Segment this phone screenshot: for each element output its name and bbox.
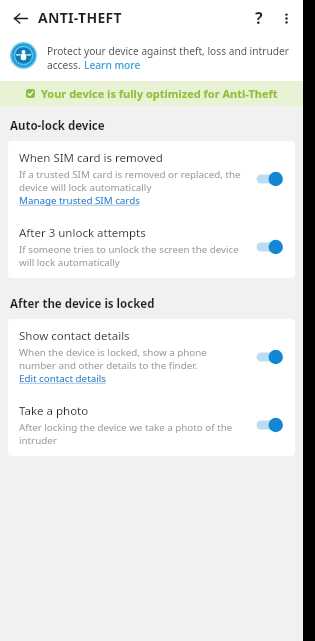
button[interactable]: Learn more: [84, 58, 141, 72]
staticText: Manage trusted SIM cards: [19, 194, 140, 207]
staticText: Show contact details: [19, 328, 130, 344]
staticText: ANTI-THEFT: [38, 8, 122, 27]
staticText: Protect your device against theft, loss …: [47, 44, 289, 58]
button[interactable]: Help: [245, 4, 273, 32]
staticText: Your device is fully optimized for Anti-…: [41, 86, 278, 101]
staticText: ?: [255, 7, 263, 29]
staticText: After locking the device we take a photo…: [19, 421, 245, 447]
button[interactable]: Take a photo: [8, 394, 295, 456]
button[interactable]: Manage trusted SIM cards: [19, 194, 140, 207]
staticText: If a trusted SIM card is removed or repl…: [19, 168, 245, 194]
staticText: access.: [47, 58, 84, 72]
button[interactable]: After 3 unlock attempts: [8, 216, 295, 278]
button[interactable]: When SIM card is removed: [8, 141, 295, 216]
button[interactable]: Toggle setting on: [249, 234, 289, 260]
staticText: Edit contact details: [19, 372, 106, 385]
staticText: When SIM card is removed: [19, 150, 163, 166]
button[interactable]: Toggle setting on: [249, 344, 289, 370]
button[interactable]: More options: [273, 5, 299, 31]
button[interactable]: Show contact details: [8, 319, 295, 394]
button[interactable]: Toggle setting on: [249, 166, 289, 192]
staticText: Auto-lock device: [10, 118, 105, 134]
staticText: Take a photo: [19, 403, 89, 419]
button[interactable]: Toggle setting on: [249, 412, 289, 438]
staticText: After 3 unlock attempts: [19, 225, 146, 241]
button[interactable]: Edit contact details: [19, 372, 106, 385]
staticText: When the device is locked, show a phone …: [19, 346, 245, 372]
button[interactable]: Back: [7, 5, 33, 31]
staticText: After the device is locked: [10, 296, 155, 312]
staticText: If someone tries to unlock the screen th…: [19, 243, 245, 269]
staticText: Learn more: [84, 58, 141, 72]
